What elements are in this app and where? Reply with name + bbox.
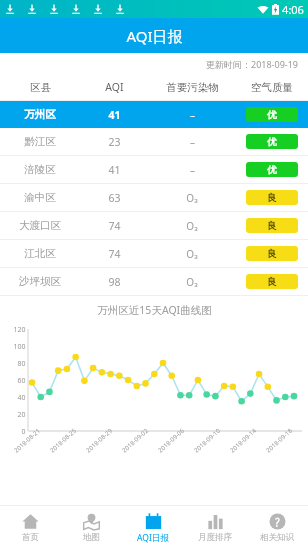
button[interactable]: 涪陵区 — [0, 156, 308, 184]
staticText: 优 — [267, 164, 277, 176]
button[interactable]: 沙坪坝区 — [0, 268, 308, 296]
staticText: 2018-08-21 — [12, 426, 41, 454]
staticText: 0 — [21, 427, 26, 437]
staticText: – — [190, 135, 195, 149]
staticText: 良 — [267, 220, 277, 232]
staticText: 4:06 — [282, 2, 304, 17]
staticText: AQI日报 — [137, 532, 169, 544]
staticText: 98 — [108, 275, 121, 289]
staticText: 黔江区 — [24, 135, 56, 148]
button[interactable]: 首页 — [0, 506, 61, 550]
staticText: 更新时间：2018-09-19 — [206, 58, 298, 70]
staticText: 渝中区 — [24, 191, 56, 204]
staticText: 区县 — [30, 81, 51, 94]
staticText: 41 — [108, 108, 121, 122]
staticText: 2018-08-25 — [48, 426, 77, 454]
button[interactable]: AQI日报 — [122, 506, 184, 550]
staticText: AQI日报 — [126, 26, 183, 46]
staticText: 41 — [108, 163, 121, 177]
staticText: 20 — [17, 410, 26, 420]
staticText: 万州区 — [24, 108, 56, 121]
staticText: 优 — [267, 136, 277, 148]
staticText: 2018-09-02 — [120, 426, 149, 454]
staticText: 月度排序 — [198, 532, 232, 543]
staticText: 40 — [17, 393, 26, 403]
staticText: 良 — [267, 248, 277, 260]
staticText: 首页 — [22, 532, 39, 543]
staticText: AQI — [105, 80, 124, 94]
staticText: 良 — [267, 192, 277, 204]
button[interactable]: 渝中区 — [0, 184, 308, 212]
staticText: 2018-08-29 — [84, 426, 113, 454]
staticText: 优 — [267, 109, 277, 121]
staticText: 74 — [108, 219, 121, 233]
staticText: O₃ — [186, 219, 198, 233]
staticText: 23 — [108, 135, 121, 149]
button[interactable]: 大渡口区 — [0, 212, 308, 240]
button[interactable]: 黔江区 — [0, 128, 308, 156]
staticText: 首要污染物 — [166, 81, 219, 94]
staticText: 60 — [17, 376, 26, 386]
staticText: 良 — [267, 276, 277, 288]
staticText: 地图 — [83, 532, 100, 543]
button[interactable]: 江北区 — [0, 240, 308, 268]
staticText: O₃ — [186, 275, 198, 289]
button[interactable]: 万州区 — [0, 101, 308, 128]
staticText: 63 — [108, 191, 121, 205]
button[interactable]: 地图 — [61, 506, 122, 550]
staticText: 大渡口区 — [19, 219, 61, 232]
staticText: O₃ — [186, 247, 198, 261]
staticText: 2018-09-14 — [228, 426, 257, 454]
staticText: 2018-09-10 — [192, 426, 221, 454]
button[interactable]: 相关知识 — [246, 506, 308, 550]
staticText: – — [190, 163, 195, 177]
staticText: 80 — [17, 359, 26, 369]
staticText: 100 — [13, 342, 26, 352]
staticText: 120 — [13, 325, 26, 335]
staticText: 相关知识 — [260, 532, 294, 543]
staticText: 空气质量 — [251, 81, 293, 94]
staticText: 2018-09-06 — [156, 426, 185, 454]
staticText: – — [190, 108, 195, 122]
staticText: 74 — [108, 247, 121, 261]
button[interactable]: 月度排序 — [184, 506, 246, 550]
staticText: 沙坪坝区 — [19, 275, 61, 288]
staticText: 江北区 — [24, 247, 56, 260]
staticText: 2018-09-18 — [264, 426, 293, 454]
staticText: 万州区近15天AQI曲线图 — [97, 303, 212, 317]
staticText: 涪陵区 — [24, 163, 56, 176]
staticText: O₃ — [186, 191, 198, 205]
